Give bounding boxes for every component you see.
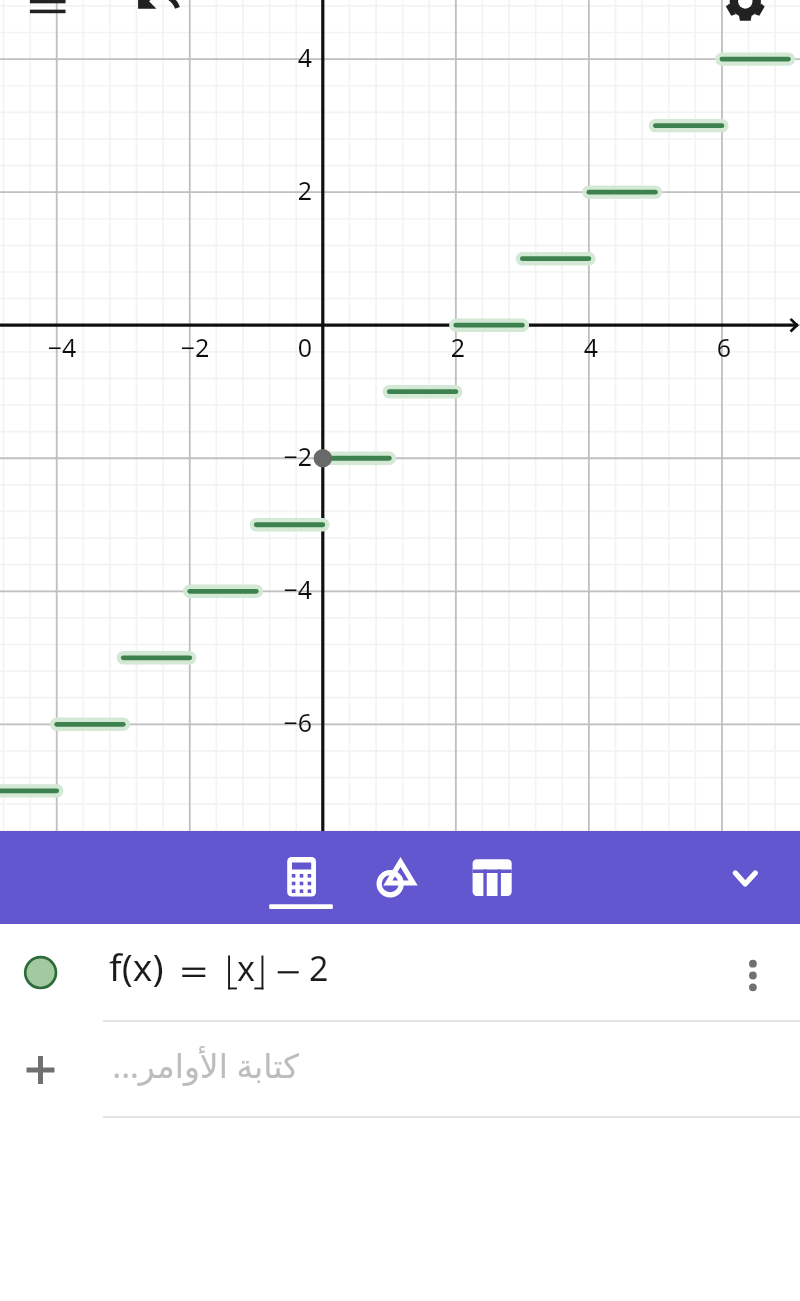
button[interactable]: Table bbox=[455, 831, 525, 923]
button[interactable]: More options bbox=[725, 944, 781, 1000]
button[interactable]: Settings bbox=[717, 0, 773, 29]
staticText: −2 bbox=[155, 330, 235, 364]
button[interactable]: Undo bbox=[134, 0, 183, 25]
staticText: 6 bbox=[684, 330, 764, 364]
button[interactable]: كتابة الأوامر... bbox=[0, 1020, 800, 1116]
staticText: 4 bbox=[551, 330, 631, 364]
button[interactable]: Menu bbox=[24, 0, 72, 26]
staticText: −4 bbox=[232, 572, 312, 606]
staticText: 2 bbox=[309, 945, 329, 991]
staticText: 2 bbox=[418, 330, 498, 364]
staticText: كتابة الأوامر... bbox=[112, 1043, 299, 1088]
staticText: 0 bbox=[232, 330, 312, 364]
button[interactable]: Collapse bbox=[717, 849, 773, 905]
staticText: −4 bbox=[22, 330, 102, 364]
button[interactable]: Geometry bbox=[362, 831, 426, 923]
staticText: −2 bbox=[232, 439, 312, 473]
staticText: 4 bbox=[232, 40, 312, 74]
staticText: f(x) bbox=[109, 941, 164, 991]
button[interactable]: f(x) bbox=[0, 924, 800, 1020]
button[interactable]: Calculator bbox=[269, 831, 333, 923]
staticText: 2 bbox=[232, 173, 312, 207]
staticText: x bbox=[237, 945, 255, 991]
staticText: −6 bbox=[232, 705, 312, 739]
